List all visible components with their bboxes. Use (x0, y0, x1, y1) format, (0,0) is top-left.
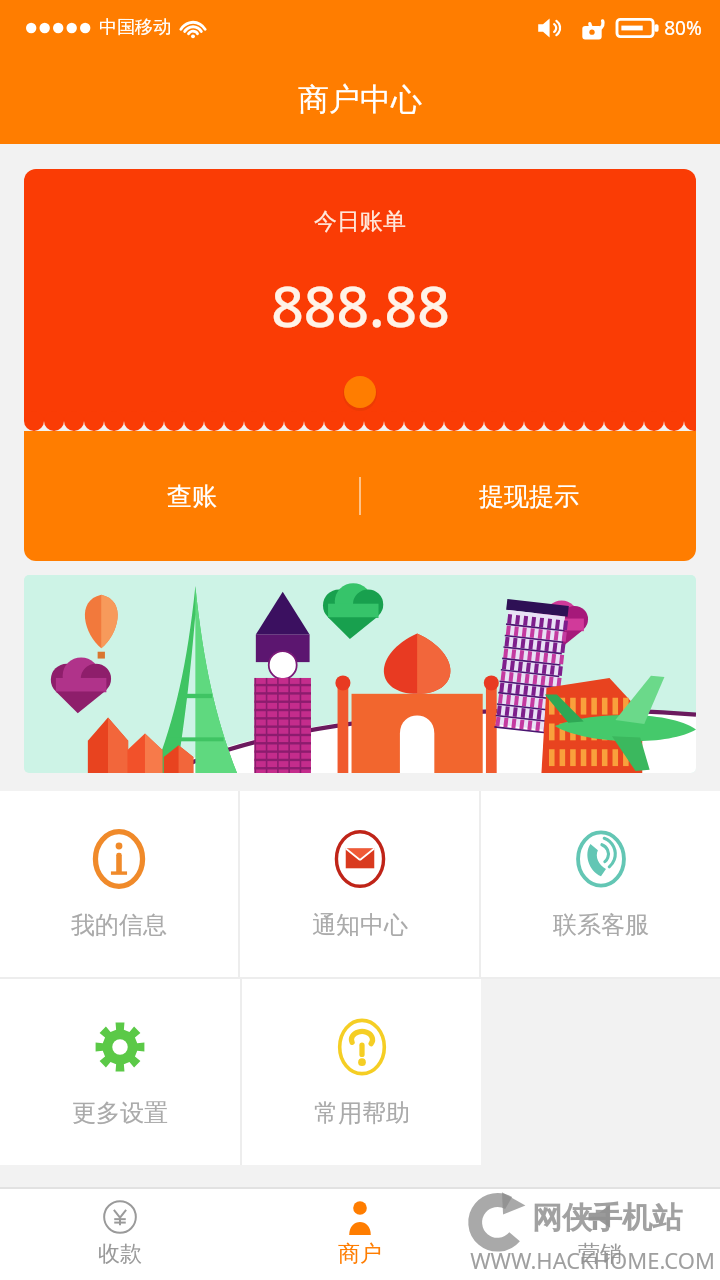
button[interactable]: 我的信息 (0, 791, 238, 977)
button[interactable]: 营销 (480, 1187, 720, 1280)
button[interactable]: 更多设置 (0, 979, 240, 1165)
staticText: 联系客服 (553, 910, 649, 940)
staticText: 商户 (338, 1240, 382, 1268)
button[interactable]: 提现提示 (361, 431, 696, 561)
staticText: 今日账单 (314, 207, 406, 236)
button[interactable]: 常用帮助 (242, 979, 481, 1165)
staticText: 80% (664, 15, 702, 41)
staticText: 营销 (578, 1240, 622, 1268)
staticText: 中国移动 (99, 16, 171, 39)
staticText: 更多设置 (72, 1098, 168, 1128)
button[interactable]: 商户 (240, 1187, 480, 1280)
staticText: 提现提示 (479, 481, 579, 512)
button[interactable]: 通知中心 (240, 791, 479, 977)
staticText: 商户中心 (298, 80, 422, 119)
staticText: 收款 (98, 1240, 142, 1268)
button[interactable]: 收款 (0, 1187, 240, 1280)
button[interactable] (24, 575, 696, 773)
staticText: 我的信息 (71, 910, 167, 940)
staticText: 通知中心 (312, 910, 408, 940)
staticText: 网侠手机站 (532, 1199, 682, 1237)
staticText: 查账 (167, 481, 217, 512)
button[interactable]: 查账 (24, 431, 359, 561)
button[interactable]: 联系客服 (481, 791, 720, 977)
staticText: WWW.HACKHOME.COM (470, 1245, 715, 1275)
staticText: 常用帮助 (314, 1098, 410, 1128)
staticText: 888.88 (271, 266, 450, 344)
